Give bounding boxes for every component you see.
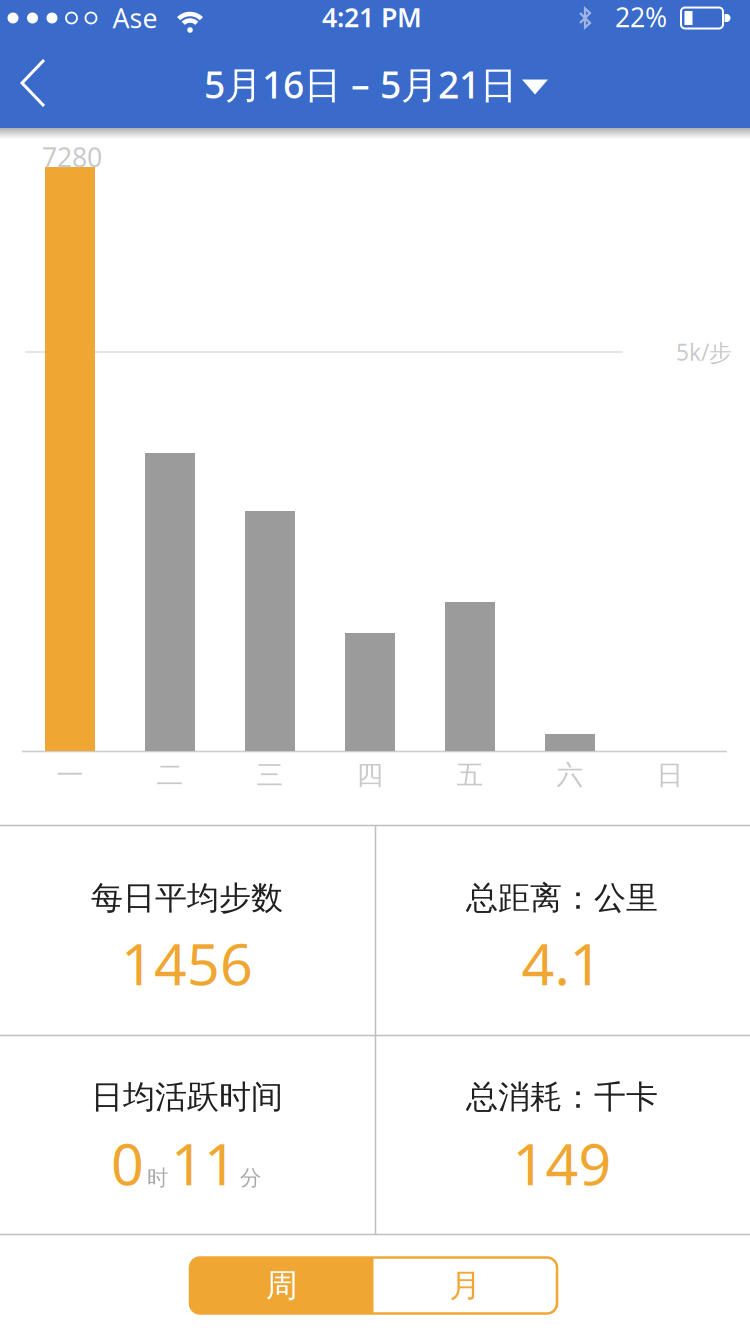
staticText: 7280	[42, 139, 102, 175]
staticText: 149	[512, 1125, 611, 1201]
staticText: 四	[356, 759, 383, 791]
staticText: 4.1	[521, 925, 602, 1001]
staticText: 5k/步	[676, 337, 732, 367]
staticText: 二	[156, 759, 183, 791]
button[interactable]: 5月16日 – 5月21日	[204, 59, 548, 109]
staticText: 月	[449, 1266, 481, 1305]
staticText: Ase	[112, 0, 157, 36]
button[interactable]: 月	[373, 1257, 557, 1313]
staticText: 日均活跃时间	[91, 1077, 283, 1117]
button[interactable]	[2, 39, 66, 127]
button[interactable]: 周	[190, 1257, 373, 1313]
staticText: 总距离：公里	[466, 878, 658, 918]
staticText: 时	[147, 1165, 168, 1191]
staticText: 1456	[121, 925, 253, 1001]
staticText: 0	[111, 1125, 144, 1201]
staticText: 总消耗：千卡	[466, 1077, 658, 1117]
staticText: 5月16日 – 5月21日	[204, 59, 517, 109]
staticText: 22%	[615, 0, 667, 35]
staticText: 每日平均步数	[91, 878, 283, 918]
staticText: 日	[656, 759, 683, 791]
staticText: 三	[256, 759, 283, 791]
staticText: 五	[456, 759, 483, 791]
staticText: 周	[266, 1266, 298, 1305]
staticText: 分	[240, 1165, 261, 1191]
staticText: 4:21 PM	[322, 0, 422, 35]
staticText: 一	[56, 759, 83, 791]
staticText: 11	[171, 1125, 237, 1201]
staticText: 六	[556, 759, 583, 791]
